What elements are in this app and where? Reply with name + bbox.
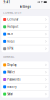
button[interactable]: Hotspot (1, 23, 49, 30)
button[interactable]: Wallet (1, 69, 49, 76)
staticText: GENERAL (3, 55, 14, 58)
staticText: VPN (7, 47, 13, 50)
staticText: Settings (19, 5, 30, 8)
button[interactable]: Display (1, 61, 49, 68)
staticText: Cellular (7, 18, 18, 21)
staticText: Display (7, 63, 16, 67)
button[interactable]: Passwords (1, 76, 49, 83)
staticText: Battery (7, 85, 16, 88)
staticText: Safari (7, 92, 13, 96)
button[interactable]: Focus (1, 38, 49, 45)
button[interactable]: VPN (1, 45, 49, 52)
staticText: Wallet (7, 70, 15, 74)
staticText: CONNECTIVITY (3, 11, 22, 14)
staticText: Passwords (7, 78, 20, 81)
staticText: 9:41 (3, 0, 10, 4)
staticText: Wi-Fi (7, 32, 13, 36)
button[interactable]: Safari (1, 91, 49, 98)
staticText: Hotspot (7, 25, 18, 28)
button[interactable]: Battery (1, 83, 49, 90)
staticText: Focus (7, 40, 14, 43)
button[interactable]: Wi-Fi (1, 31, 49, 38)
button[interactable]: Cellular (1, 16, 49, 23)
